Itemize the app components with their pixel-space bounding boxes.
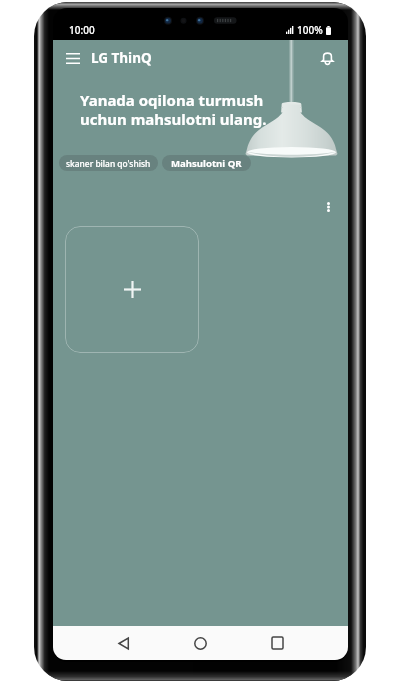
button[interactable]: Back <box>109 629 137 657</box>
button[interactable]: Mahsulotni QR <box>162 155 251 171</box>
button[interactable]: Add product <box>65 226 199 353</box>
button[interactable]: Notifications <box>314 45 340 71</box>
staticText: Mahsulotni QR <box>171 157 242 170</box>
staticText: 10:00 <box>69 23 95 37</box>
button[interactable]: More options <box>315 194 341 220</box>
button[interactable]: Home <box>186 629 214 657</box>
button[interactable]: Open navigation menu <box>60 45 86 71</box>
staticText: LG ThinQ <box>91 49 152 67</box>
button[interactable]: skaner bilan qo'shish <box>59 155 158 171</box>
staticText: skaner bilan qo'shish <box>66 158 151 169</box>
staticText: Yanada oqilona turmush uchun mahsulotni … <box>80 90 267 129</box>
button[interactable]: Recent apps <box>263 629 291 657</box>
staticText: 100% <box>297 23 323 37</box>
